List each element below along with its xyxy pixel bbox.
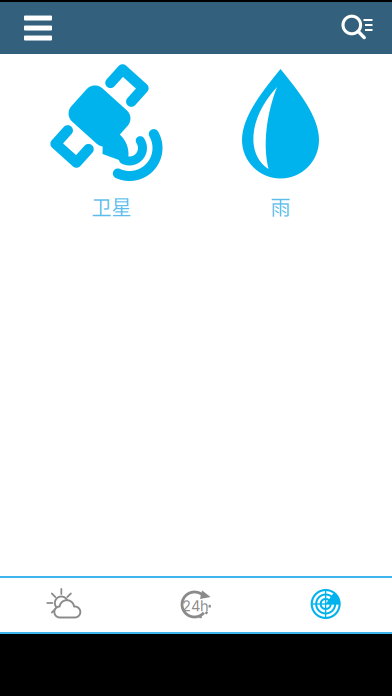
staticText: 雨 — [270, 192, 290, 221]
button[interactable]: Weather — [0, 578, 131, 632]
button[interactable]: 24 hour forecast — [131, 578, 261, 632]
staticText: 24h — [182, 597, 209, 615]
button[interactable]: Radar — [261, 578, 392, 632]
button[interactable]: 雨 — [196, 62, 365, 221]
staticText: 卫星 — [91, 192, 131, 221]
button[interactable]: 卫星 — [27, 62, 196, 221]
button[interactable]: Menu — [0, 2, 68, 54]
button[interactable]: Search — [324, 2, 392, 54]
